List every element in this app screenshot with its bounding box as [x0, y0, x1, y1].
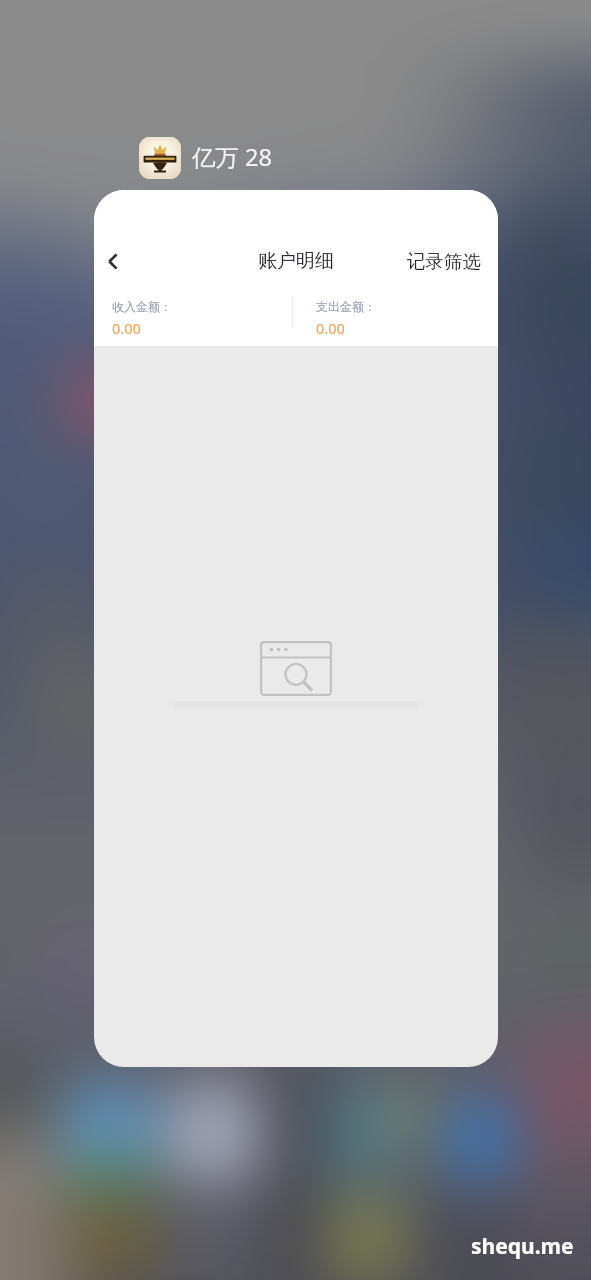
staticText: 0.00 [112, 318, 141, 338]
staticText: 0.00 [316, 318, 345, 338]
staticText: shequ.me [471, 1232, 574, 1261]
button[interactable]: 记录筛选 [390, 239, 498, 284]
button[interactable]: Back [94, 238, 136, 284]
staticText: 亿万 28 [192, 141, 272, 173]
staticText: 收入金额： [112, 299, 172, 314]
staticText: 支出金额： [316, 299, 376, 314]
staticText: 记录筛选 [407, 250, 481, 273]
staticText: 账户明细 [258, 249, 334, 273]
